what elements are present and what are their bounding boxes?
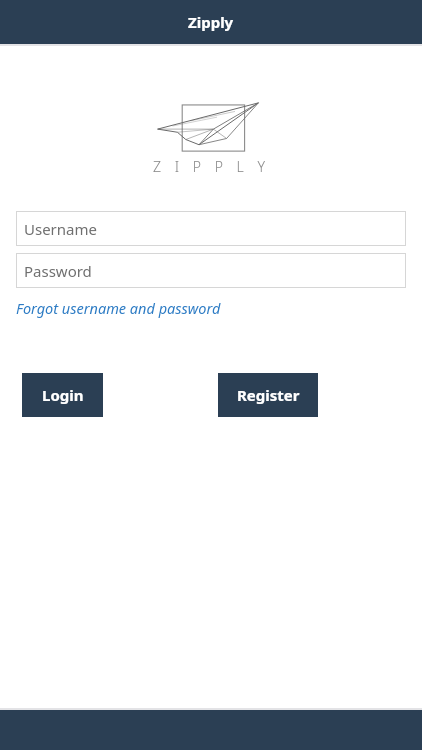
staticText: Username — [24, 219, 97, 239]
button[interactable]: Register — [218, 373, 318, 417]
button[interactable]: Login — [22, 373, 103, 417]
staticText: Forgot username and password — [16, 298, 221, 318]
button[interactable]: Username — [16, 211, 406, 246]
staticText: Login — [42, 385, 84, 405]
staticText: Zipply — [188, 12, 234, 32]
staticText: Z I P P L Y — [153, 157, 270, 176]
button[interactable]: Password — [16, 253, 406, 288]
button[interactable]: Forgot username and password — [16, 297, 221, 319]
staticText: Password — [24, 261, 92, 281]
staticText: Register — [237, 385, 300, 405]
